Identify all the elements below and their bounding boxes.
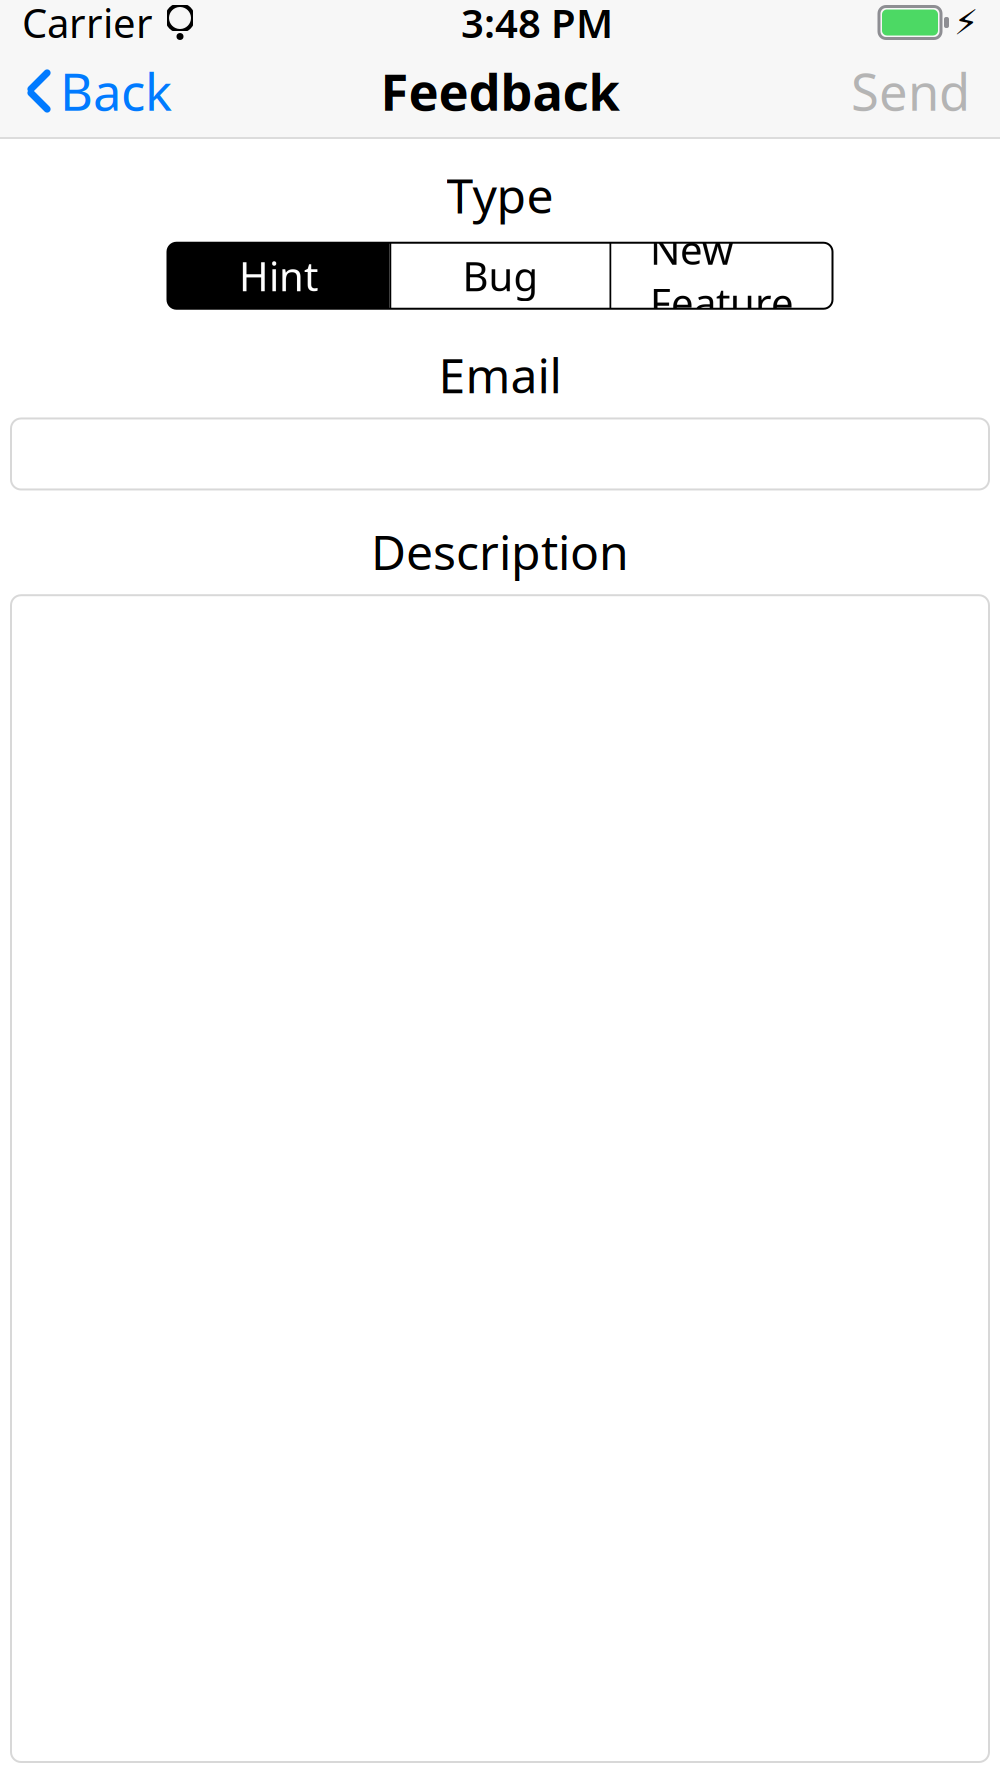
button[interactable]: Bug xyxy=(391,243,609,309)
button[interactable]: Back xyxy=(0,45,188,137)
staticText: Send xyxy=(851,57,970,125)
staticText: Type xyxy=(446,163,553,227)
staticText: Carrier xyxy=(22,0,153,49)
staticText: Hint xyxy=(239,249,318,302)
staticText: Description xyxy=(371,519,629,583)
staticText: New Feature xyxy=(650,223,794,329)
button[interactable]: Send xyxy=(835,45,1000,137)
staticText: ⚡︎ xyxy=(954,3,978,42)
staticText: Email xyxy=(438,343,561,406)
staticText: 3:48 PM xyxy=(461,0,613,49)
staticText: Bug xyxy=(462,249,538,302)
staticText: Feedback xyxy=(380,57,619,125)
button[interactable]: Hint xyxy=(167,243,389,309)
staticText: Back xyxy=(60,57,172,125)
button[interactable]: New Feature xyxy=(611,243,832,309)
